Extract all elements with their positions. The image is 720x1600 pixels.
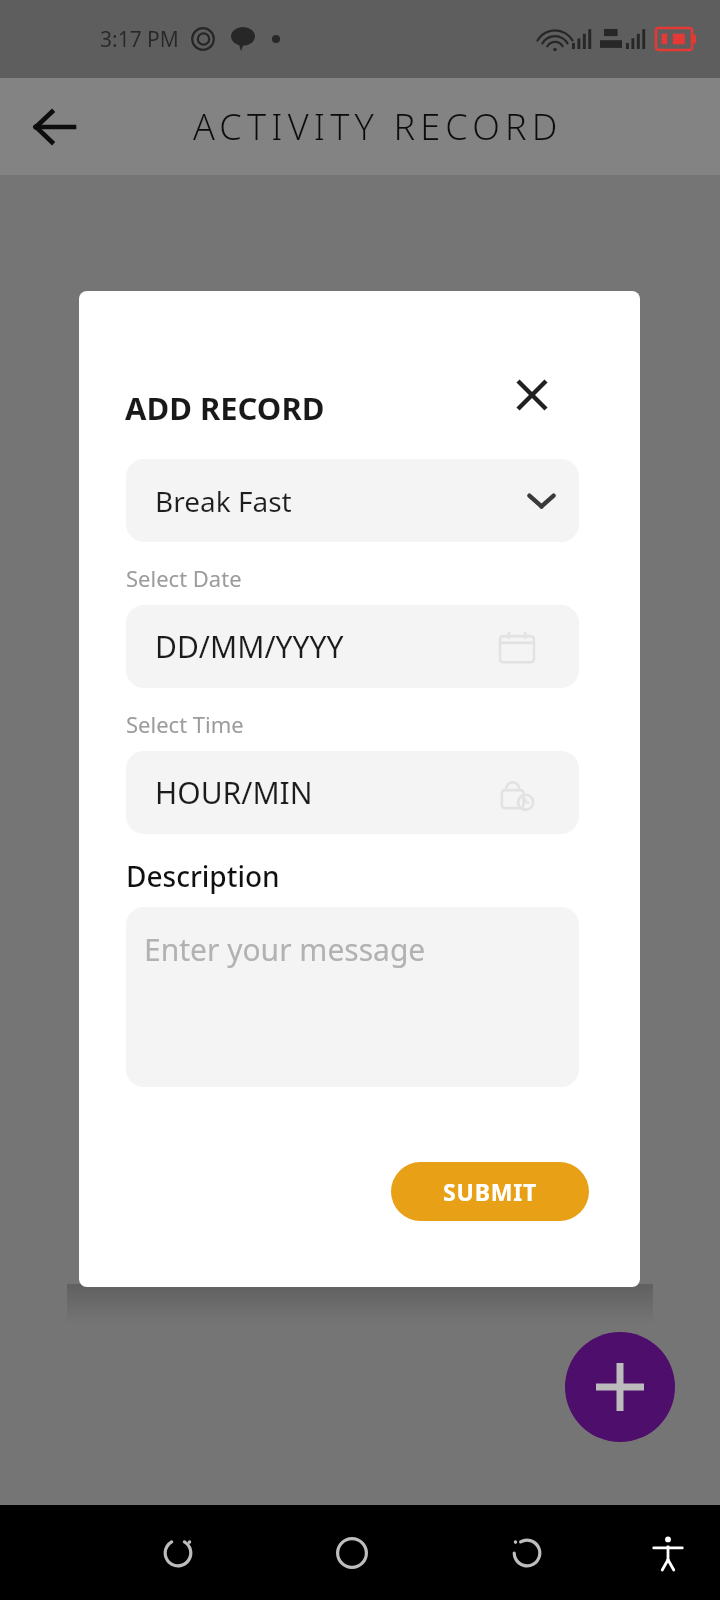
staticText: Enter your message bbox=[144, 929, 426, 970]
staticText: Select Time bbox=[126, 709, 244, 739]
button[interactable]: Break Fast bbox=[126, 459, 579, 542]
staticText: 3:17 PM bbox=[100, 25, 179, 54]
button[interactable]: Accessibility bbox=[630, 1515, 706, 1591]
staticText: ACTIVITY RECORD bbox=[193, 102, 563, 151]
button[interactable]: Add record bbox=[565, 1332, 675, 1442]
button[interactable]: Back bbox=[20, 92, 90, 162]
button[interactable]: Recent apps bbox=[487, 1513, 567, 1593]
staticText: Break Fast bbox=[155, 482, 292, 520]
button[interactable]: SUBMIT bbox=[391, 1162, 589, 1221]
staticText: Select Date bbox=[126, 563, 242, 593]
button[interactable]: DD/MM/YYYY bbox=[126, 605, 579, 688]
button[interactable]: Enter your message bbox=[126, 907, 579, 1087]
button[interactable]: Close bbox=[503, 366, 561, 424]
staticText: SUBMIT bbox=[443, 1176, 538, 1207]
staticText: Description bbox=[126, 857, 280, 895]
button[interactable]: Back bbox=[138, 1513, 218, 1593]
button[interactable]: HOUR/MIN bbox=[126, 751, 579, 834]
staticText: DD/MM/YYYY bbox=[155, 626, 344, 667]
staticText: ADD RECORD bbox=[125, 387, 325, 429]
button[interactable]: Home bbox=[312, 1513, 392, 1593]
staticText: HOUR/MIN bbox=[155, 772, 313, 813]
